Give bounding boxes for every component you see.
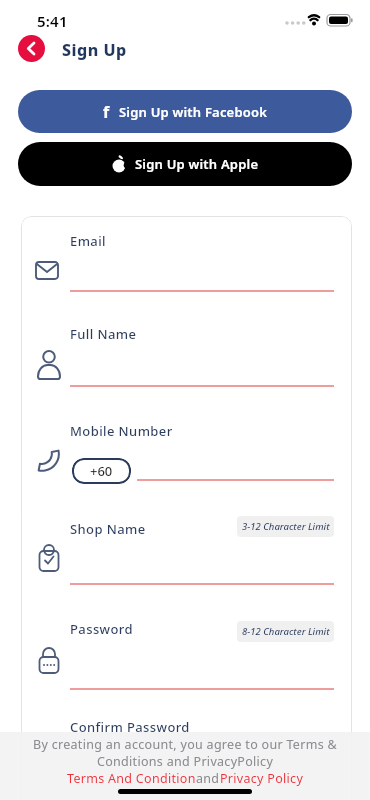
staticText: Sign Up with Apple (135, 155, 259, 173)
button[interactable]: Sign Up with Apple (18, 142, 352, 186)
staticText: 3-12 Character Limit (242, 520, 330, 533)
staticText: and (196, 770, 220, 787)
staticText: By creating an account, you agree to our… (33, 736, 337, 753)
staticText: Mobile Number (70, 422, 173, 440)
staticText: 5:41 (37, 11, 68, 31)
staticText: f (103, 101, 110, 123)
staticText: Sign Up (62, 39, 127, 61)
staticText: +60 (90, 462, 113, 480)
staticText: Shop Name (70, 520, 146, 538)
button[interactable] (18, 35, 45, 62)
staticText: Full Name (70, 325, 137, 343)
button[interactable]: Privacy Policy (220, 770, 304, 787)
staticText: Email (70, 232, 107, 250)
staticText: Confirm Password (70, 718, 190, 736)
staticText: Conditions and PrivacyPolicy (97, 753, 274, 770)
staticText: Password (70, 620, 133, 638)
staticText: 8-12 Character Limit (242, 625, 330, 638)
staticText: Sign Up with Facebook (119, 103, 268, 121)
button[interactable]: f (18, 90, 352, 133)
button[interactable]: Terms And Condition (67, 770, 196, 787)
